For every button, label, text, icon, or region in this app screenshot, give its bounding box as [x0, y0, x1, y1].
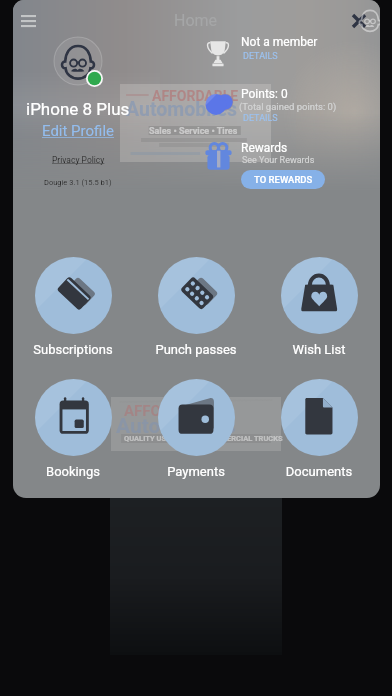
staticText: Subscriptions	[18, 342, 128, 357]
staticText: (Total gained points: 0)	[239, 101, 337, 112]
staticText: TO REWARDS	[254, 174, 313, 185]
button[interactable]: Punch passes	[141, 257, 251, 359]
staticText: AFFORDABLE	[124, 402, 217, 420]
staticText: DETAILS	[243, 51, 278, 62]
button[interactable]: DETAILS	[243, 51, 278, 62]
staticText: Rewards	[241, 141, 288, 155]
staticText: Privacy Policy	[52, 155, 105, 165]
staticText: Bookings	[18, 464, 128, 479]
button[interactable]: Wish List	[264, 257, 374, 359]
button[interactable]: DETAILS	[243, 113, 278, 124]
staticText: Wish List	[264, 342, 374, 357]
button[interactable]: Privacy Policy	[46, 154, 110, 166]
button[interactable]: Bookings	[18, 379, 128, 481]
button[interactable]: Edit Profile	[36, 122, 120, 138]
button[interactable]: Subscriptions	[18, 257, 128, 359]
staticText: Punch passes	[141, 342, 251, 357]
button[interactable]: Payments	[141, 379, 251, 481]
staticText: See Your Rewards	[242, 155, 315, 166]
staticText: AFFORDABLE	[152, 88, 239, 104]
staticText: Automobiles	[126, 98, 238, 121]
button[interactable]: Menu	[13, 6, 43, 36]
staticText: Automobiles	[116, 414, 236, 439]
staticText: Home	[174, 11, 218, 30]
button[interactable]: Documents	[264, 379, 374, 481]
staticText: Sales • Service • Tires	[149, 126, 238, 137]
button[interactable]: TO REWARDS	[241, 170, 325, 189]
staticText: QUALITY USED CARS COMMERCIAL TRUCKS	[124, 434, 283, 443]
staticText: Not a member	[241, 35, 318, 49]
staticText: Edit Profile	[42, 122, 114, 138]
staticText: DETAILS	[243, 113, 278, 124]
staticText: Documents	[264, 464, 374, 479]
button[interactable]: Close	[345, 7, 373, 35]
staticText: Payments	[141, 464, 251, 479]
staticText: Points: 0	[241, 87, 288, 101]
staticText: iPhone 8 Plus	[26, 99, 130, 119]
staticText: Dougie 3.1 (15.5 b1)	[44, 178, 112, 187]
